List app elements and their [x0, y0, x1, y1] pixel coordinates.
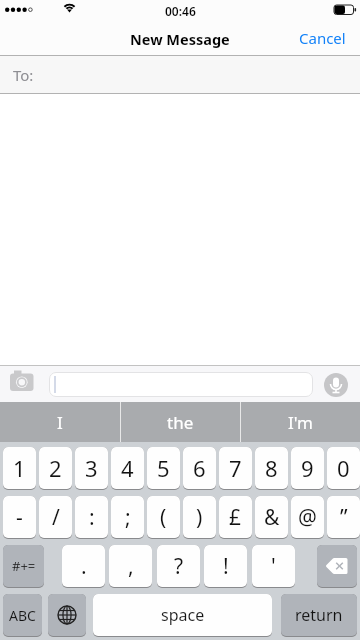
staticText: 8: [265, 453, 278, 483]
staticText: :: [89, 503, 95, 532]
button[interactable]: (: [147, 496, 180, 539]
button[interactable]: ): [183, 496, 216, 539]
button[interactable]: ?: [157, 545, 200, 588]
staticText: .: [81, 552, 87, 581]
button[interactable]: ,: [109, 545, 152, 588]
button[interactable]: [49, 372, 313, 397]
staticText: ;: [125, 503, 131, 532]
button[interactable]: !: [204, 545, 247, 588]
staticText: ': [271, 552, 276, 581]
staticText: ): [196, 503, 203, 532]
staticText: &: [264, 503, 280, 532]
staticText: ,: [128, 552, 134, 581]
staticText: 3: [85, 453, 98, 483]
staticText: the: [167, 411, 194, 434]
staticText: 1: [13, 453, 26, 483]
button[interactable]: I: [0, 402, 120, 442]
button[interactable]: 1: [3, 447, 36, 490]
button[interactable]: 3: [75, 447, 108, 490]
button[interactable]: #+=: [3, 545, 44, 588]
staticText: /: [52, 503, 60, 532]
staticText: !: [223, 552, 229, 581]
staticText: I'm: [288, 411, 313, 434]
staticText: I: [57, 411, 63, 434]
button[interactable]: -: [3, 496, 36, 539]
staticText: ”: [340, 503, 348, 532]
button[interactable]: &: [255, 496, 288, 539]
button[interactable]: 2: [39, 447, 72, 490]
staticText: #+=: [12, 557, 36, 575]
button[interactable]: the: [121, 402, 240, 442]
staticText: Cancel: [299, 28, 346, 48]
staticText: ABC: [9, 606, 36, 625]
staticText: 2: [49, 453, 62, 483]
staticText: 6: [193, 453, 206, 483]
button[interactable]: [0, 366, 48, 402]
button[interactable]: return: [281, 594, 357, 637]
button[interactable]: /: [39, 496, 72, 539]
staticText: -: [16, 503, 23, 532]
staticText: 7: [229, 453, 242, 483]
button[interactable]: To:: [0, 56, 360, 93]
staticText: return: [295, 604, 343, 626]
staticText: @: [298, 503, 317, 532]
button[interactable]: @: [291, 496, 324, 539]
staticText: 0: [337, 453, 350, 483]
staticText: £: [229, 503, 242, 532]
staticText: (: [160, 503, 167, 532]
staticText: 00:46: [165, 3, 196, 19]
staticText: New Message: [130, 29, 230, 49]
button[interactable]: 9: [291, 447, 324, 490]
button[interactable]: 7: [219, 447, 252, 490]
staticText: space: [161, 604, 205, 626]
button[interactable]: ': [252, 545, 295, 588]
staticText: 5: [157, 453, 170, 483]
button[interactable]: 6: [183, 447, 216, 490]
button[interactable]: .: [62, 545, 105, 588]
button[interactable]: ABC: [3, 594, 42, 637]
staticText: To:: [13, 65, 34, 85]
button[interactable]: [317, 545, 357, 588]
button[interactable]: ”: [327, 496, 360, 539]
button[interactable]: space: [93, 594, 272, 637]
button[interactable]: 5: [147, 447, 180, 490]
button[interactable]: :: [75, 496, 108, 539]
button[interactable]: 8: [255, 447, 288, 490]
button[interactable]: 0: [327, 447, 360, 490]
staticText: ?: [174, 552, 184, 581]
staticText: 9: [301, 453, 314, 483]
staticText: 4: [121, 453, 134, 483]
button[interactable]: I'm: [241, 402, 360, 442]
button[interactable]: £: [219, 496, 252, 539]
button[interactable]: [48, 594, 86, 637]
button[interactable]: [324, 373, 348, 397]
button[interactable]: ;: [111, 496, 144, 539]
button[interactable]: 4: [111, 447, 144, 490]
button[interactable]: Cancel: [293, 22, 352, 54]
